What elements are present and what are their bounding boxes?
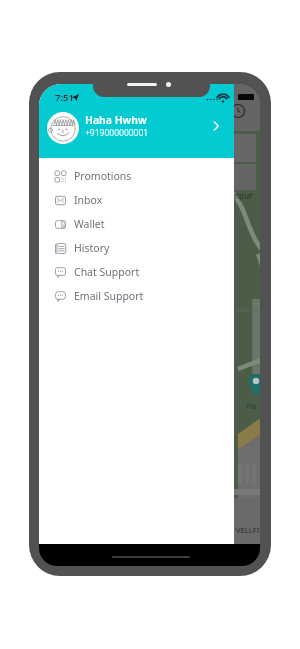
other: Account details [209,119,223,133]
staticText: +919000000001 [85,127,149,139]
staticText: Wallet [74,217,105,231]
staticText: Chat Support [74,265,140,279]
staticText: Pla [246,402,257,412]
staticText: Haha Hwhw [85,113,147,127]
button[interactable]: Wallet [39,212,234,236]
staticText: Inbox [74,193,103,207]
button[interactable]: Promotions [39,164,234,188]
staticText: VELLFIR [236,525,260,535]
staticText: npur [234,190,253,201]
button[interactable]: Inbox [39,188,234,212]
staticText: Email Support [74,289,144,303]
button[interactable]: Haha Hwhw [39,110,234,146]
staticText: Promotions [74,169,132,183]
button[interactable]: History [39,236,234,260]
staticText: Gardens [235,306,259,314]
staticText: History [74,241,110,255]
staticText: 7:51 [55,91,74,104]
button[interactable]: Email Support [39,284,234,308]
button[interactable]: Chat Support [39,260,234,284]
